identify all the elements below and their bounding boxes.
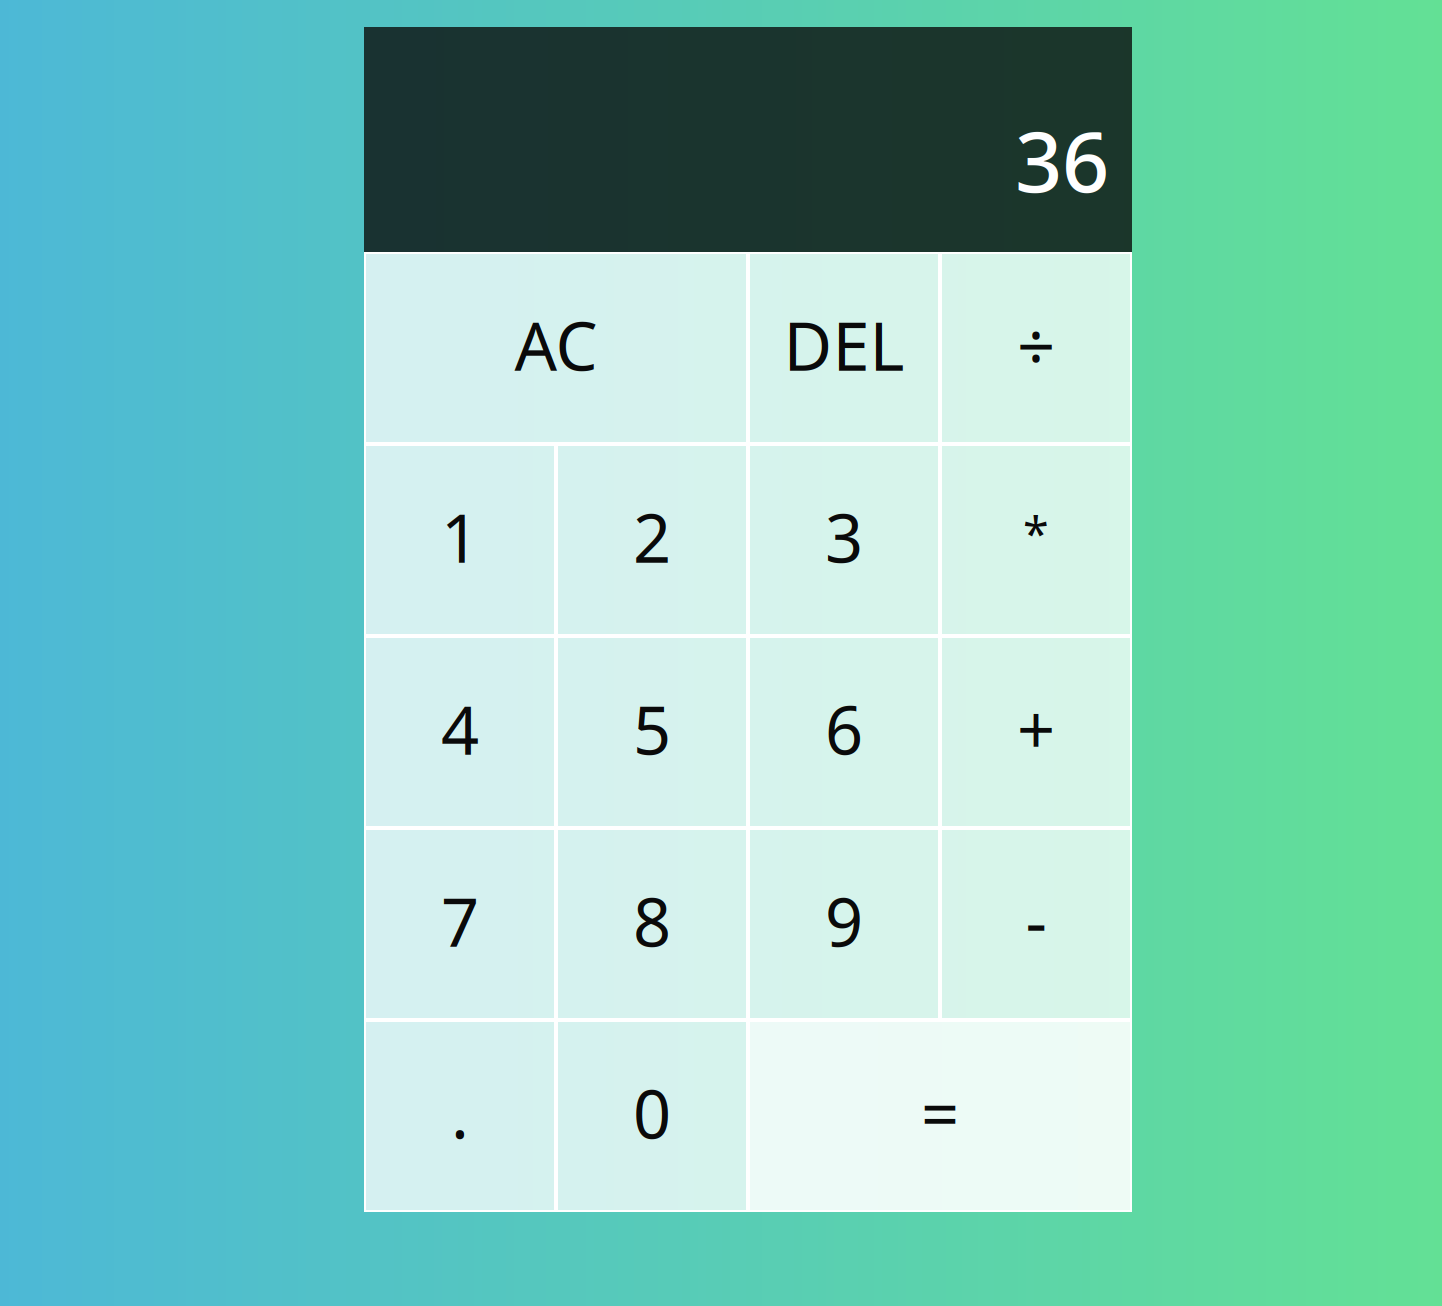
staticText: 36 xyxy=(1015,105,1109,215)
button[interactable]: All clear xyxy=(366,254,746,442)
button[interactable]: Two xyxy=(558,446,746,634)
staticText: . xyxy=(451,1069,469,1157)
button[interactable]: Delete xyxy=(750,254,938,442)
staticText: 5 xyxy=(633,685,671,773)
staticText: 1 xyxy=(441,493,479,581)
staticText: 4 xyxy=(441,685,479,773)
button[interactable]: Divide xyxy=(942,254,1130,442)
button[interactable]: One xyxy=(366,446,554,634)
staticText: 6 xyxy=(825,685,863,773)
button[interactable]: Six xyxy=(750,638,938,826)
button[interactable]: Eight xyxy=(558,830,746,1018)
staticText: * xyxy=(1023,502,1049,564)
staticText: ÷ xyxy=(1017,301,1055,389)
button[interactable]: Zero xyxy=(558,1022,746,1210)
staticText: 3 xyxy=(825,493,863,581)
staticText: AC xyxy=(514,301,597,389)
button[interactable]: Decimal point xyxy=(366,1022,554,1210)
staticText: DEL xyxy=(783,301,904,389)
button[interactable]: Subtract xyxy=(942,830,1130,1018)
button[interactable]: Add xyxy=(942,638,1130,826)
button[interactable]: Nine xyxy=(750,830,938,1018)
staticText: + xyxy=(1017,685,1055,773)
staticText: - xyxy=(1025,877,1046,965)
staticText: 0 xyxy=(633,1069,671,1157)
staticText: 9 xyxy=(825,877,863,965)
staticText: = xyxy=(921,1069,959,1157)
button[interactable]: Four xyxy=(366,638,554,826)
button[interactable]: Three xyxy=(750,446,938,634)
staticText: 2 xyxy=(633,493,671,581)
button[interactable]: Five xyxy=(558,638,746,826)
button[interactable]: Seven xyxy=(366,830,554,1018)
button[interactable]: Multiply xyxy=(942,446,1130,634)
staticText: 7 xyxy=(441,877,479,965)
button[interactable]: Equals xyxy=(750,1022,1130,1210)
staticText: 8 xyxy=(633,877,671,965)
